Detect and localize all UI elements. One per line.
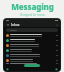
button[interactable] (4, 33, 60, 38)
staticText: Inbox (11, 23, 20, 27)
button[interactable]: More options (55, 23, 58, 26)
button[interactable]: Contacts (55, 68, 58, 71)
button[interactable] (6, 28, 58, 32)
button[interactable] (4, 38, 60, 43)
staticText: Designed for teams (20, 13, 45, 17)
button[interactable] (4, 58, 60, 63)
button[interactable] (4, 63, 60, 64)
button[interactable]: Start new chat (24, 64, 40, 67)
button[interactable]: Chats (6, 68, 9, 71)
button[interactable] (4, 48, 60, 53)
staticText: Messaging (11, 1, 54, 12)
button[interactable] (4, 43, 60, 48)
button[interactable]: Open navigation menu (6, 23, 9, 26)
button[interactable] (4, 53, 60, 58)
